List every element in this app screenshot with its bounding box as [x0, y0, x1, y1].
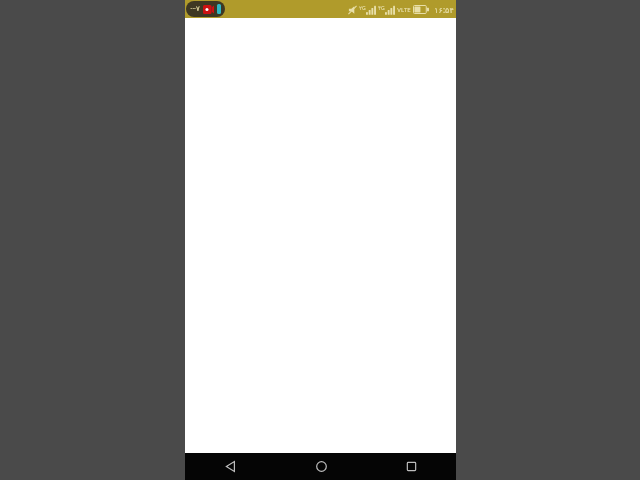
staticText: ۴G: [378, 5, 385, 12]
staticText: VLTE: [397, 6, 411, 14]
other: Silent mode: [348, 5, 357, 15]
other: Battery: [413, 5, 429, 14]
button[interactable]: Home: [276, 453, 366, 480]
button[interactable]: Recent apps: [366, 453, 456, 480]
staticText: ۲G: [359, 5, 366, 12]
button[interactable]: Back: [185, 453, 276, 480]
staticText: ۱۶:۵۴: [434, 4, 454, 15]
staticText: ···۷: [190, 4, 200, 14]
